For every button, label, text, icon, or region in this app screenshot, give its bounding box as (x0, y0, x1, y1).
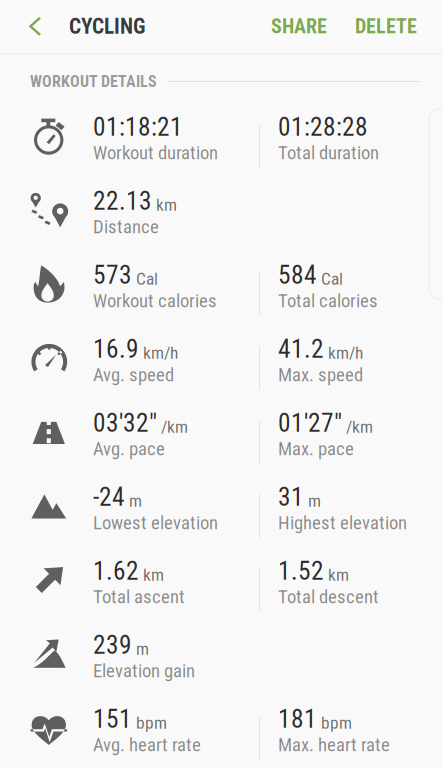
staticText: 31 (278, 482, 304, 512)
staticText: Total descent (278, 586, 379, 608)
staticText: 41.2 (278, 334, 324, 364)
staticText: km/h (143, 343, 178, 363)
staticText: WORKOUT DETAILS (30, 72, 157, 91)
staticText: 22.13 (93, 186, 152, 216)
staticText: 1.62 (93, 556, 139, 586)
staticText: m (136, 639, 149, 659)
staticText: /km (161, 417, 188, 437)
staticText: Cal (136, 269, 158, 289)
staticText: km (156, 195, 177, 215)
staticText: km (328, 565, 349, 585)
staticText: Workout calories (93, 290, 217, 312)
staticText: DELETE (355, 15, 417, 38)
staticText: 584 (278, 260, 317, 290)
staticText: -24 (93, 482, 125, 512)
staticText: 03'32" (93, 408, 157, 438)
staticText: Lowest elevation (93, 512, 218, 534)
staticText: 01:28:28 (278, 112, 368, 142)
staticText: bpm (136, 713, 167, 733)
staticText: 01:18:21 (93, 112, 183, 142)
staticText: 573 (93, 260, 132, 290)
staticText: 1.52 (278, 556, 324, 586)
button[interactable]: CYCLING (53, 0, 159, 53)
staticText: CYCLING (69, 14, 145, 39)
staticText: Max. heart rate (278, 734, 390, 756)
staticText: Total ascent (93, 586, 185, 608)
staticText: 16.9 (93, 334, 139, 364)
staticText: Highest elevation (278, 512, 407, 534)
staticText: Max. speed (278, 364, 363, 386)
staticText: Avg. speed (93, 364, 174, 386)
staticText: /km (346, 417, 373, 437)
staticText: m (129, 491, 142, 511)
staticText: bpm (321, 713, 352, 733)
staticText: Workout duration (93, 142, 218, 164)
button[interactable]: SHARE (257, 0, 341, 53)
staticText: Total duration (278, 142, 379, 164)
staticText: 151 (93, 704, 132, 734)
button[interactable]: Back (0, 0, 53, 53)
staticText: 01'27" (278, 408, 342, 438)
staticText: Cal (321, 269, 343, 289)
staticText: SHARE (271, 15, 327, 38)
staticText: m (308, 491, 321, 511)
staticText: Total calories (278, 290, 378, 312)
staticText: Max. pace (278, 438, 354, 460)
staticText: Elevation gain (93, 660, 195, 682)
staticText: 181 (278, 704, 317, 734)
staticText: Avg. heart rate (93, 734, 201, 756)
staticText: 239 (93, 630, 132, 660)
staticText: Avg. pace (93, 438, 165, 460)
button[interactable]: DELETE (341, 0, 443, 53)
staticText: km (143, 565, 164, 585)
staticText: Distance (93, 216, 159, 238)
staticText: km/h (328, 343, 363, 363)
